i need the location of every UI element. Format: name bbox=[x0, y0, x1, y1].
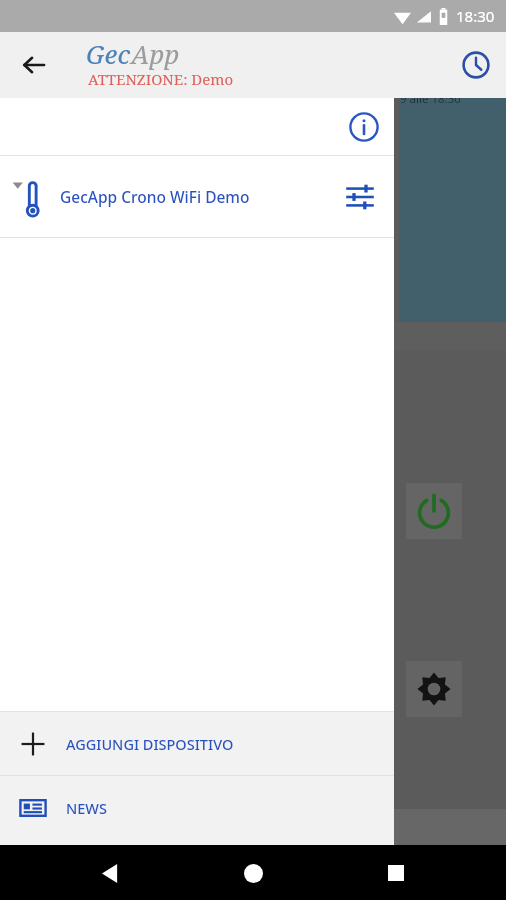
button[interactable]: Back bbox=[10, 41, 58, 89]
staticText: Gec bbox=[86, 36, 131, 71]
button[interactable]: Info bbox=[341, 104, 387, 150]
button[interactable]: Tune bbox=[338, 175, 382, 219]
staticText: ATTENZIONE: Demo bbox=[88, 69, 234, 89]
staticText: 9 alle 18:30 bbox=[400, 91, 461, 107]
staticText: 18:30 bbox=[456, 6, 495, 26]
button[interactable]: Settings bbox=[406, 661, 462, 717]
button[interactable]: AGGIUNGI DISPOSITIVO bbox=[0, 712, 394, 775]
button[interactable]: Home bbox=[229, 849, 277, 897]
button[interactable]: Recents bbox=[372, 849, 420, 897]
button[interactable]: Power bbox=[406, 483, 462, 539]
button[interactable]: GecApp Crono WiFi Demo bbox=[0, 156, 394, 237]
staticText: AGGIUNGI DISPOSITIVO bbox=[66, 734, 234, 754]
staticText: NEWS bbox=[66, 798, 107, 818]
button[interactable]: NEWS bbox=[0, 776, 394, 839]
staticText: App bbox=[131, 36, 180, 71]
staticText: GecApp Crono WiFi Demo bbox=[60, 186, 250, 207]
button[interactable]: Schedule bbox=[452, 41, 500, 89]
button[interactable]: Back bbox=[86, 849, 134, 897]
